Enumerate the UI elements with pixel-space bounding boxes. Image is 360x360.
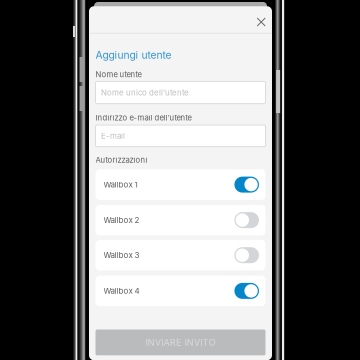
staticText: Wallbox 3	[103, 250, 139, 260]
staticText: Autorizzazioni	[95, 155, 147, 165]
staticText: Wallbox 4	[103, 286, 139, 296]
button[interactable]: Wallbox 1	[95, 169, 265, 200]
button[interactable]: Wallbox 3	[95, 240, 265, 270]
staticText: E-mail	[101, 131, 125, 141]
button[interactable]: Wallbox 2	[95, 205, 265, 235]
staticText: Aggiungi utente	[95, 49, 171, 61]
button[interactable]: Wallbox 4	[95, 276, 265, 306]
button[interactable]: INVIARE INVITO	[95, 329, 265, 355]
staticText: Nome utente	[95, 70, 141, 79]
staticText: Nome unico dell'utente	[101, 88, 189, 97]
staticText: INVIARE INVITO	[145, 337, 216, 348]
staticText: Wallbox 2	[103, 215, 139, 225]
staticText: Wallbox 1	[103, 180, 137, 189]
button[interactable]: Close	[247, 6, 272, 33]
staticText: Indirizzo e-mail dell'utente	[95, 113, 191, 122]
